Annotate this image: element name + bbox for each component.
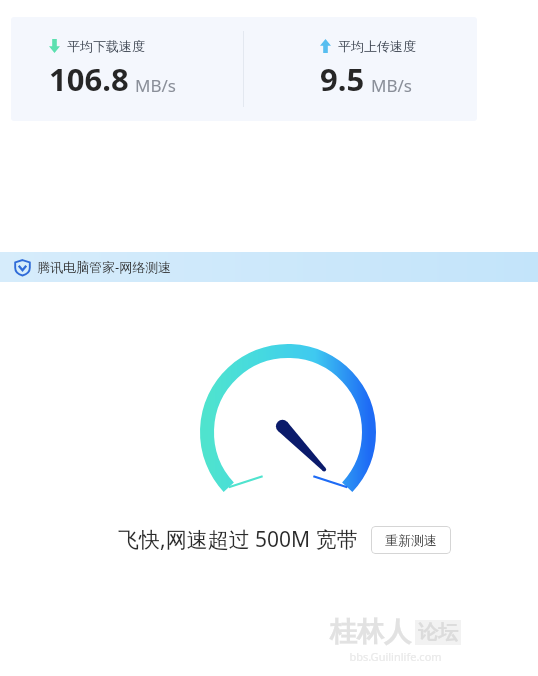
button[interactable]: 重新测速 [371,526,451,554]
staticText: 桂林人 [330,615,411,649]
staticText: 论坛 [418,620,458,645]
staticText: 飞快,网速超过 500M 宽带 [118,525,358,554]
staticText: 9.5 [320,58,365,100]
staticText: 106.8 [49,58,129,100]
staticText: 重新测速 [385,532,437,548]
button[interactable]: 腾讯电脑管家 [0,252,538,282]
staticText: 平均下载速度 [67,38,145,54]
staticText: MB/s [135,74,176,97]
staticText: 平均上传速度 [338,38,416,54]
staticText: MB/s [371,74,412,97]
staticText: bbs.Guilinlife.com [349,649,442,664]
other: 腾讯电脑管家 [14,259,31,276]
staticText: 腾讯电脑管家-网络测速 [37,258,172,276]
